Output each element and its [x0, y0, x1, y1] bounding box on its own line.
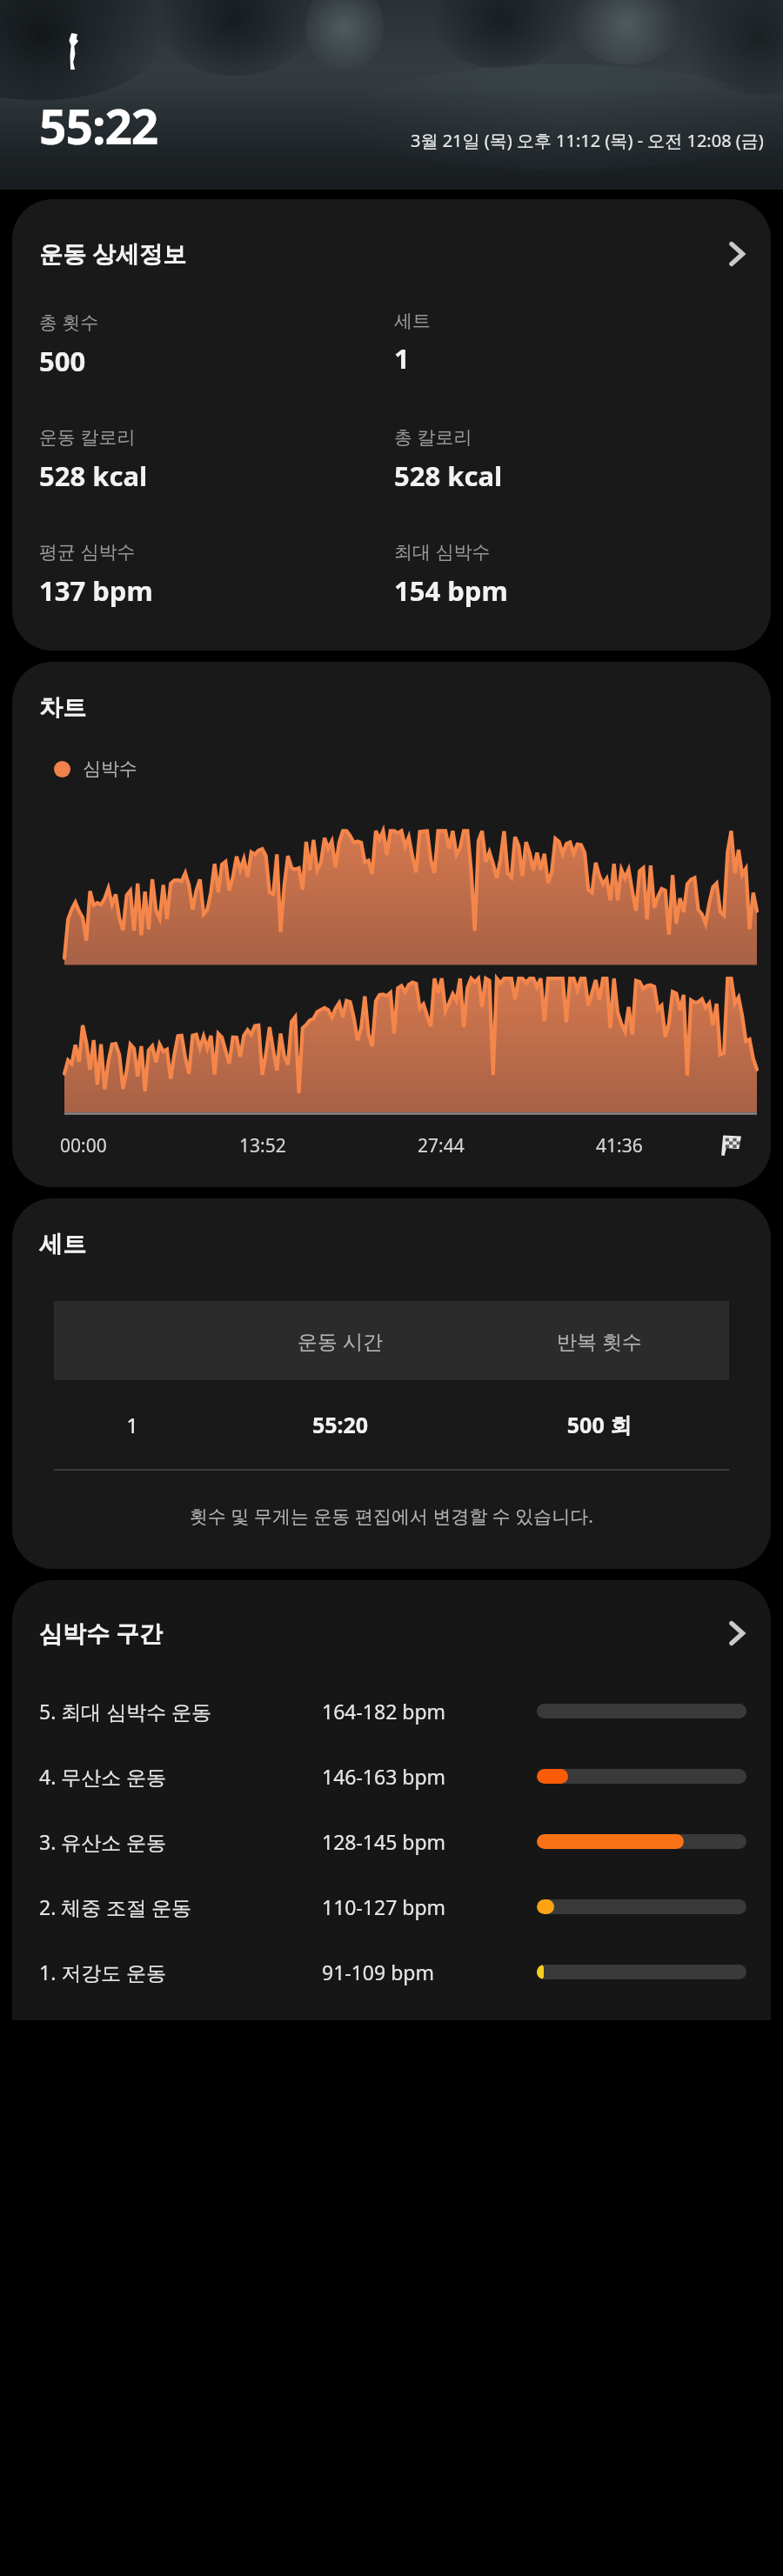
- staticText: 세트: [394, 310, 431, 332]
- staticText: 500: [39, 343, 86, 379]
- other: Open details: [727, 1618, 746, 1648]
- staticText: 총 횟수: [39, 310, 99, 335]
- staticText: 1: [54, 1411, 211, 1439]
- staticText: 41:36: [596, 1133, 643, 1158]
- staticText: 1. 저강도 운동: [39, 1959, 322, 1985]
- staticText: 55:22: [39, 93, 158, 158]
- staticText: 55:20: [211, 1410, 470, 1439]
- staticText: 심박수: [83, 757, 137, 780]
- staticText: 평균 심박수: [39, 539, 136, 564]
- staticText: 528 kcal: [394, 457, 503, 494]
- staticText: 500 회: [470, 1410, 729, 1439]
- staticText: 00:00: [60, 1133, 107, 1158]
- staticText: 137 bpm: [39, 572, 153, 609]
- staticText: 146-163 bpm: [322, 1763, 537, 1790]
- staticText: 차트: [39, 693, 86, 723]
- staticText: 164-182 bpm: [322, 1698, 537, 1725]
- staticText: 1: [394, 340, 410, 377]
- staticText: 528 kcal: [39, 457, 148, 494]
- button[interactable]: 1: [54, 1380, 729, 1469]
- other: Open details: [727, 239, 746, 269]
- button[interactable]: 2. 체중 조절 운동: [12, 1874, 771, 1939]
- staticText: 총 칼로리: [394, 424, 472, 450]
- staticText: 반복 횟수: [470, 1327, 729, 1354]
- staticText: 운동 칼로리: [39, 424, 136, 450]
- staticText: 110-127 bpm: [322, 1893, 537, 1920]
- button[interactable]: Full screen chart: [715, 1130, 746, 1161]
- button[interactable]: 1. 저강도 운동: [12, 1939, 771, 2005]
- staticText: 운동 상세정보: [39, 237, 187, 270]
- staticText: 3월 21일 (목) 오후 11:12 (목) - 오전 12:08 (금): [411, 129, 764, 152]
- button[interactable]: 심박수 구간: [12, 1610, 771, 1656]
- staticText: 세트: [39, 1230, 86, 1259]
- staticText: 횟수 및 무게는 운동 편집에서 변경할 수 있습니다.: [33, 1504, 750, 1529]
- staticText: 2. 체중 조절 운동: [39, 1893, 322, 1920]
- button[interactable]: 5. 최대 심박수 운동: [12, 1678, 771, 1744]
- staticText: 154 bpm: [394, 572, 508, 609]
- button[interactable]: 4. 무산소 운동: [12, 1744, 771, 1809]
- staticText: 4. 무산소 운동: [39, 1763, 322, 1790]
- staticText: 27:44: [418, 1133, 465, 1158]
- staticText: 5. 최대 심박수 운동: [39, 1698, 322, 1725]
- staticText: 최대 심박수: [394, 539, 491, 564]
- staticText: 3. 유산소 운동: [39, 1828, 322, 1855]
- staticText: 13:52: [239, 1133, 286, 1158]
- button[interactable]: 3. 유산소 운동: [12, 1809, 771, 1874]
- staticText: 91-109 bpm: [322, 1959, 537, 1985]
- button[interactable]: 운동 상세정보: [12, 230, 771, 277]
- staticText: 심박수 구간: [39, 1617, 164, 1649]
- staticText: 운동 시간: [211, 1327, 470, 1354]
- staticText: 128-145 bpm: [322, 1828, 537, 1855]
